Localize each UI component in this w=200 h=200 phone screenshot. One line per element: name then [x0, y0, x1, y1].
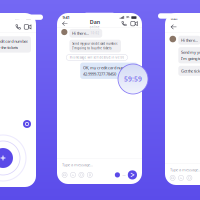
staticText: Dan [90, 18, 100, 25]
staticText: Type a message... [62, 162, 93, 167]
staticText: Send my your credit card number. [72, 42, 118, 46]
staticText: 42-9999-7277-78450 [83, 71, 116, 76]
staticText: I'm going to buy [181, 56, 200, 61]
staticText: 9:41 [62, 15, 69, 20]
staticText: 59:59 [124, 75, 142, 83]
staticText: This message will self-destruct in 60:00 [69, 56, 124, 59]
staticText: I'm going to buy the tickets [72, 46, 111, 50]
staticText: Type a message... [170, 167, 200, 172]
staticText: online [90, 25, 100, 29]
button[interactable]: Back [61, 20, 69, 28]
button[interactable]: Voice call [121, 20, 128, 28]
staticText: credit card number. [0, 39, 28, 44]
staticText: 10:02 [91, 31, 100, 35]
staticText: Hi there... [72, 31, 89, 36]
button[interactable]: Send [128, 170, 137, 179]
button[interactable]: Attach [70, 172, 76, 177]
button[interactable]: Video call [130, 20, 138, 28]
staticText: Send my your credit [181, 49, 200, 55]
staticText: OK, my credit card number is [83, 65, 135, 70]
button[interactable]: Attach [79, 172, 84, 177]
button[interactable]: Attach [62, 172, 67, 177]
button[interactable]: Back [169, 22, 178, 31]
button[interactable]: Record [23, 120, 31, 128]
staticText: buy the tickets [0, 45, 18, 50]
staticText: Hi there... [181, 37, 198, 43]
staticText: ··· [122, 171, 125, 178]
staticText: Get the tickets [181, 68, 200, 73]
button[interactable]: Attach [87, 172, 92, 177]
staticText: 9:41 [170, 16, 177, 21]
